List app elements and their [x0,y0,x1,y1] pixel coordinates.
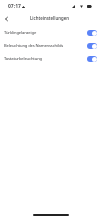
button[interactable]: Zurück [0,12,13,25]
staticText: Lichteinstellungen [30,15,69,21]
staticText: 07:17 [8,3,21,10]
staticText: Tastaturbeleuchtung [4,56,85,62]
button[interactable]: Ein [87,30,97,36]
button[interactable]: Türklingelanzeige [0,26,101,39]
button[interactable]: Ein [87,43,97,49]
staticText: Beleuchtung des Namensschilds [4,43,85,49]
staticText: Türklingelanzeige [4,30,85,36]
button[interactable]: Tastaturbeleuchtung [0,52,101,65]
button[interactable]: Beleuchtung des Namensschilds [0,39,101,52]
button[interactable]: Ein [87,56,97,62]
